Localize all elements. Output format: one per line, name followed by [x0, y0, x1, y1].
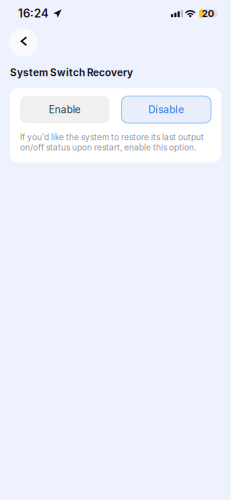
staticText: Enable: [49, 103, 81, 116]
staticText: 20: [202, 8, 214, 19]
staticText: 16:24: [18, 7, 49, 20]
button[interactable]: Back: [9, 28, 38, 57]
staticText: System Switch Recovery: [10, 66, 133, 79]
staticText: Disable: [148, 103, 184, 116]
staticText: If you'd like the system to restore its …: [20, 132, 204, 152]
button[interactable]: Enable: [20, 96, 109, 123]
button[interactable]: Disable: [121, 96, 211, 123]
